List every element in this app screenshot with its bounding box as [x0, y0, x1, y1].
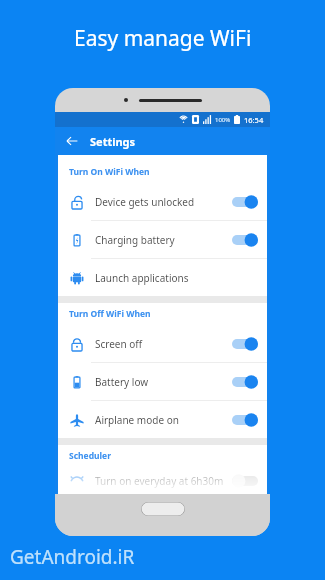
- staticText: Device gets unlocked: [95, 195, 232, 209]
- staticText: 16:54: [244, 115, 264, 125]
- staticText: GetAndroid.iR: [10, 544, 135, 570]
- button[interactable]: Toggle Device gets unlocked: [232, 194, 258, 210]
- button[interactable]: Toggle Charging battery: [232, 232, 258, 248]
- staticText: Screen off: [95, 337, 232, 351]
- staticText: Turn On WiFi When: [69, 166, 150, 178]
- staticText: Turn Off WiFi When: [69, 308, 151, 320]
- button[interactable]: Toggle Battery low: [232, 374, 258, 390]
- staticText: Scheduler: [69, 450, 111, 462]
- button[interactable]: Toggle Airplane mode on: [232, 412, 258, 428]
- staticText: Easy manage WiFi: [74, 24, 252, 53]
- button[interactable]: Home: [141, 502, 185, 516]
- staticText: Charging battery: [95, 233, 232, 247]
- staticText: Turn on everyday at 6h30m: [95, 474, 232, 488]
- button[interactable]: Device gets unlocked: [58, 183, 267, 220]
- button[interactable]: Airplane mode on: [58, 401, 267, 438]
- staticText: Airplane mode on: [95, 413, 232, 427]
- button[interactable]: Charging battery: [58, 221, 267, 258]
- staticText: 100%: [215, 116, 231, 124]
- staticText: Battery low: [95, 375, 232, 389]
- button[interactable]: Turn on everyday at 6h30m: [58, 467, 267, 494]
- button[interactable]: Battery low: [58, 363, 267, 400]
- button[interactable]: Launch applications: [58, 259, 267, 296]
- staticText: Settings: [90, 134, 136, 149]
- button[interactable]: Toggle Turn on everyday at 6h30m: [232, 473, 258, 489]
- button[interactable]: Screen off: [58, 325, 267, 362]
- button[interactable]: Back: [62, 131, 82, 151]
- staticText: Launch applications: [95, 271, 258, 285]
- button[interactable]: Toggle Screen off: [232, 336, 258, 352]
